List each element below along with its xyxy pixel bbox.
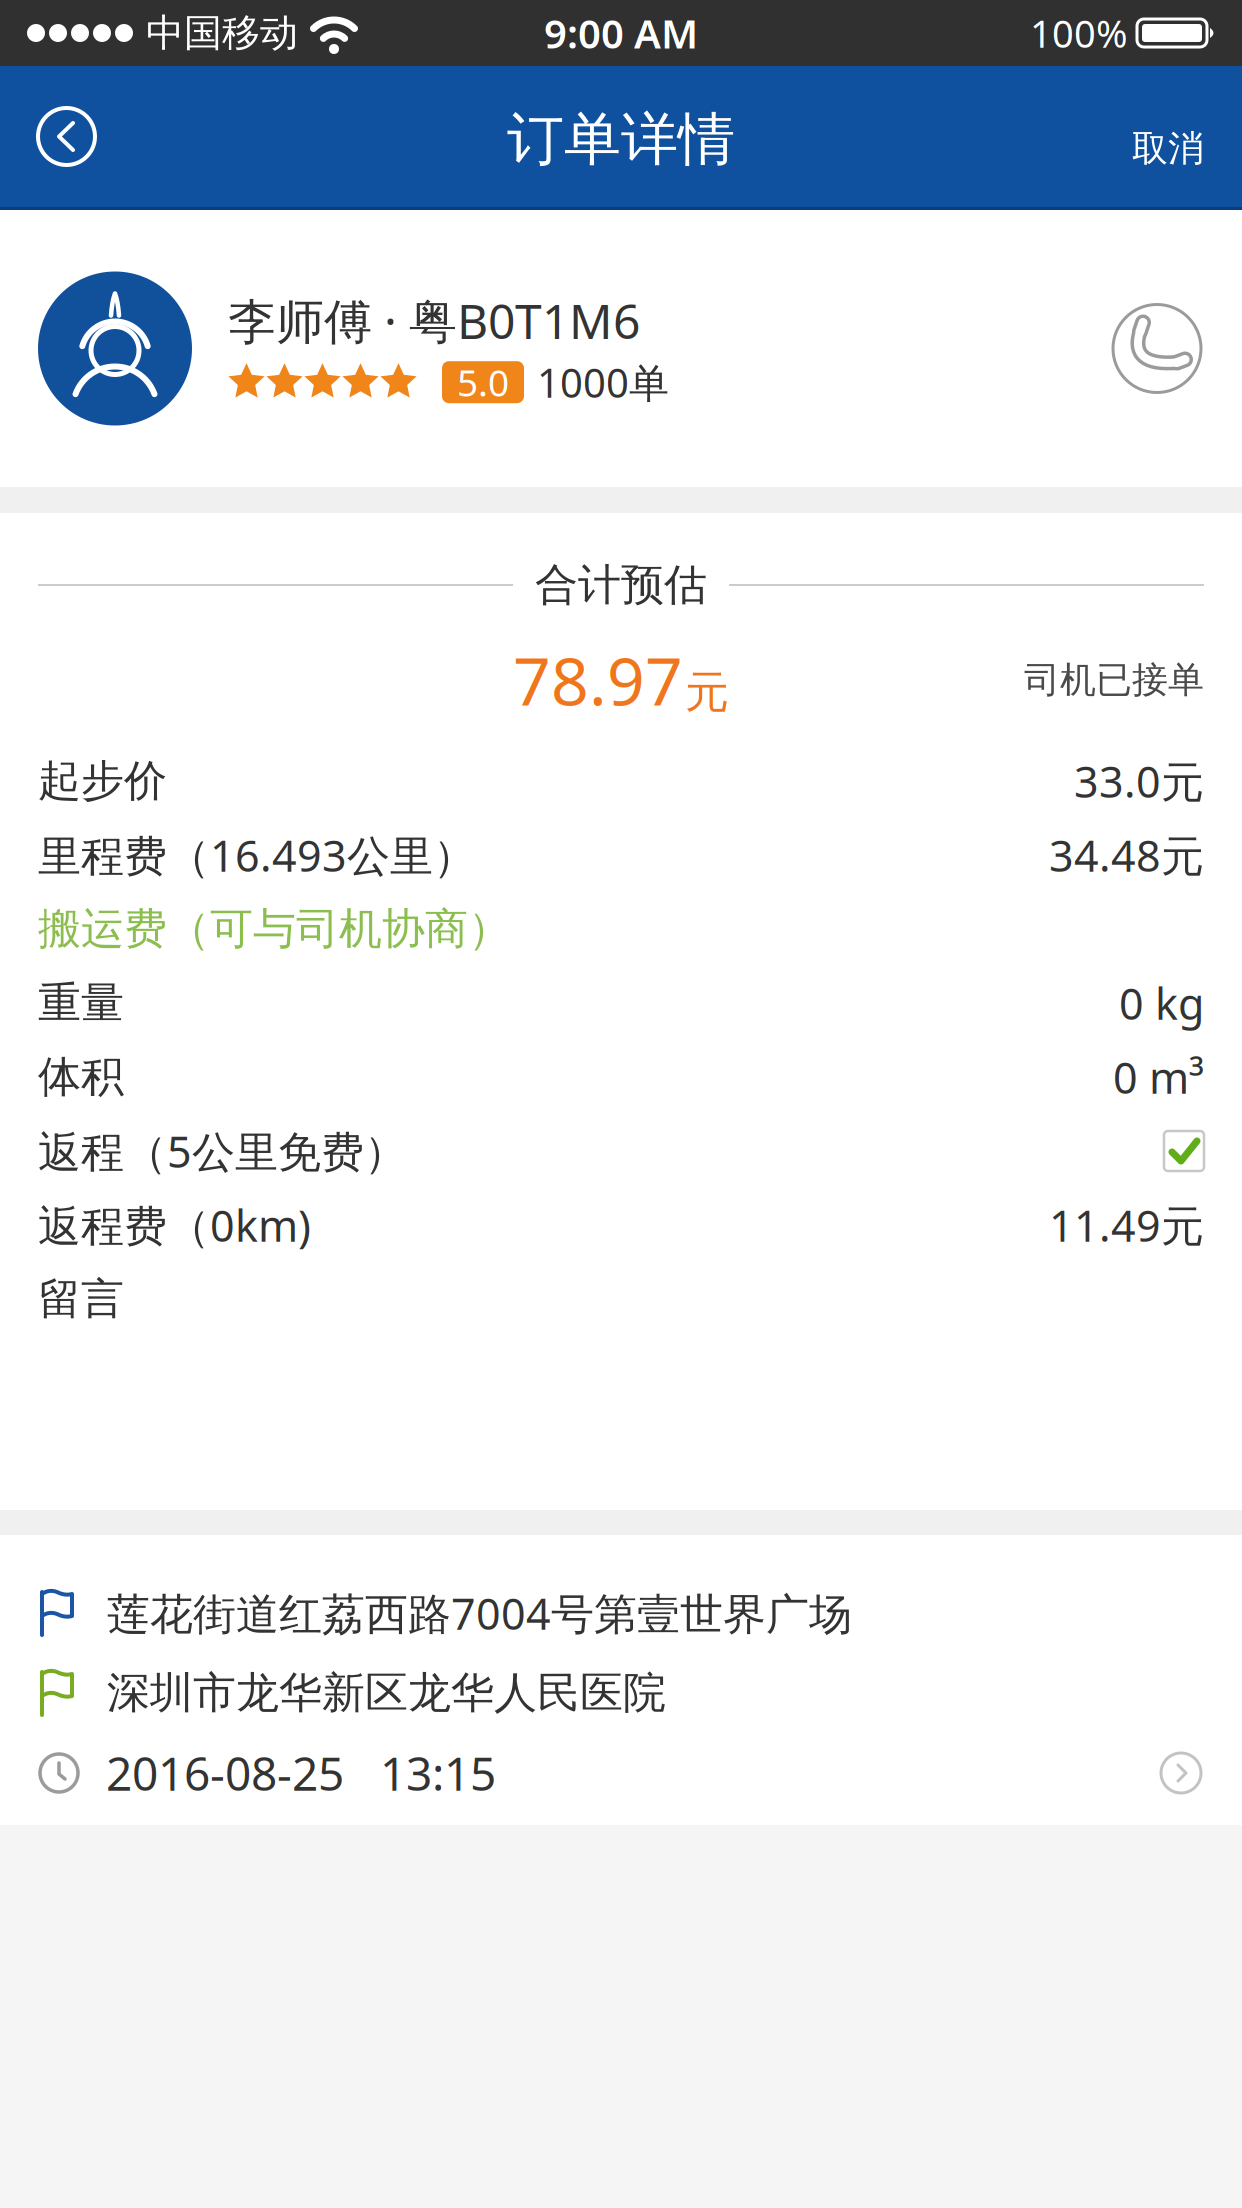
staticText: 重量 [38,976,124,1030]
staticText: 2016-08-25 13:15 [106,1742,496,1804]
button[interactable]: 返程 [1164,1131,1204,1171]
staticText: 深圳市龙华新区龙华人民医院 [107,1666,666,1720]
staticText: 里程费（16.493公里） [38,826,476,884]
button[interactable]: 取消 [1132,114,1204,159]
staticText: 返程费（0km) [38,1196,311,1254]
staticText: 订单详情 [507,104,735,175]
staticText: 返程（5公里免费） [38,1122,407,1180]
staticText: 元 [685,664,729,720]
staticText: 合计预估 [535,558,707,612]
staticText: 5.0 [457,357,509,407]
staticText: 莲花街道红荔西路7004号第壹世界广场 [107,1584,852,1642]
staticText: 11.49元 [1049,1196,1204,1254]
staticText: 100% [1030,7,1128,59]
staticText: 体积 [38,1050,124,1104]
staticText: 0 m³ [1113,1048,1204,1106]
staticText: 0 kg [1119,974,1204,1032]
staticText: 1000单 [537,355,669,409]
staticText: 中国移动 [146,9,298,57]
staticText: 取消 [1132,126,1204,171]
staticText: 34.48元 [1049,826,1204,884]
button[interactable]: 2016-08-25 13:15 [38,1733,1201,1813]
button[interactable]: Back [38,108,95,165]
staticText: 司机已接单 [1024,657,1204,703]
staticText: 78.97 [513,635,683,725]
staticText: 李师傅 · 粤B0T1M6 [228,288,640,353]
button[interactable]: Call driver [1113,304,1201,392]
staticText: 9:00 AM [544,6,698,60]
staticText: 33.0元 [1074,752,1204,810]
staticText: 搬运费（可与司机协商） [38,902,511,956]
staticText: 留言 [38,1272,124,1326]
staticText: 起步价 [38,754,167,808]
